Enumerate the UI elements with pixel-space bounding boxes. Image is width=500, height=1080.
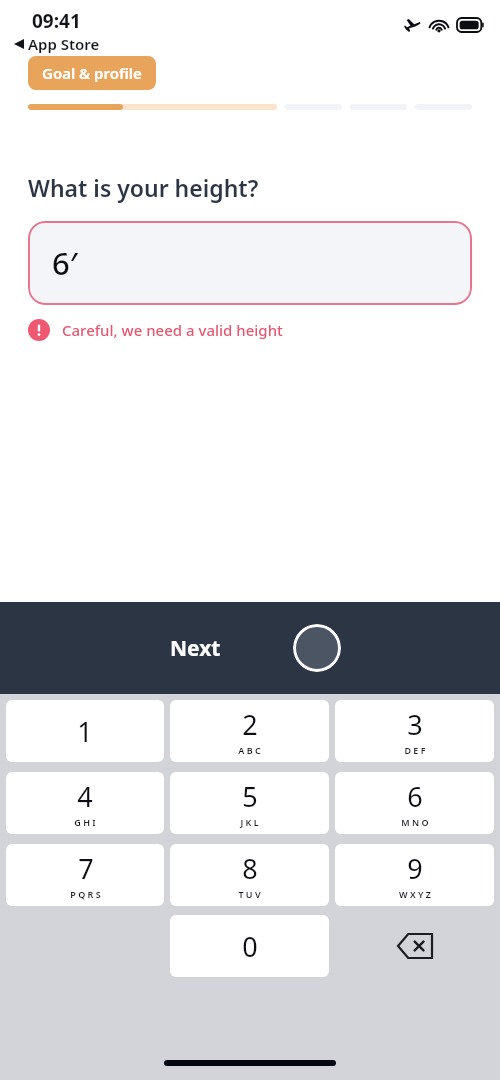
staticText: T U V xyxy=(238,888,261,900)
staticText: M N O xyxy=(401,816,429,828)
button[interactable]: 3 xyxy=(335,700,494,762)
button[interactable]: Next xyxy=(160,628,231,669)
button[interactable]: 0 xyxy=(170,915,329,977)
staticText: 0 xyxy=(242,928,258,965)
button[interactable]: 2 xyxy=(170,700,329,762)
staticText: 7 xyxy=(78,850,94,887)
staticText: J K L xyxy=(240,816,259,828)
staticText: 1 xyxy=(77,713,93,750)
button[interactable]: 8 xyxy=(170,844,329,906)
button[interactable]: Record xyxy=(293,624,341,672)
staticText: App Store xyxy=(28,34,100,54)
staticText: 6 xyxy=(407,778,423,815)
staticText: 8 xyxy=(242,850,258,887)
staticText: 6′ xyxy=(52,242,78,284)
button[interactable]: 6′ xyxy=(28,221,472,305)
staticText: 3 xyxy=(407,706,423,743)
staticText: Goal & profile xyxy=(42,63,142,83)
button[interactable]: 4 xyxy=(6,772,164,834)
button[interactable]: 5 xyxy=(170,772,329,834)
staticText: G H I xyxy=(74,816,96,828)
staticText: 5 xyxy=(242,778,258,815)
button[interactable]: Backspace xyxy=(335,915,494,977)
staticText: What is your height? xyxy=(28,172,259,203)
staticText: 9 xyxy=(407,850,423,887)
staticText: P Q R S xyxy=(70,888,101,900)
button[interactable]: 9 xyxy=(335,844,494,906)
staticText: Next xyxy=(170,634,221,663)
staticText: D E F xyxy=(404,744,426,756)
staticText: 2 xyxy=(242,706,258,743)
staticText: 4 xyxy=(77,778,93,815)
button[interactable]: 1 xyxy=(6,700,164,762)
button[interactable]: Goal & profile xyxy=(28,56,156,90)
button[interactable]: 6 xyxy=(335,772,494,834)
button[interactable]: 7 xyxy=(6,844,164,906)
staticText: A B C xyxy=(238,744,261,756)
staticText: W X Y Z xyxy=(399,888,431,900)
staticText: 09:41 xyxy=(32,8,81,34)
staticText: Careful, we need a valid height xyxy=(62,320,283,340)
